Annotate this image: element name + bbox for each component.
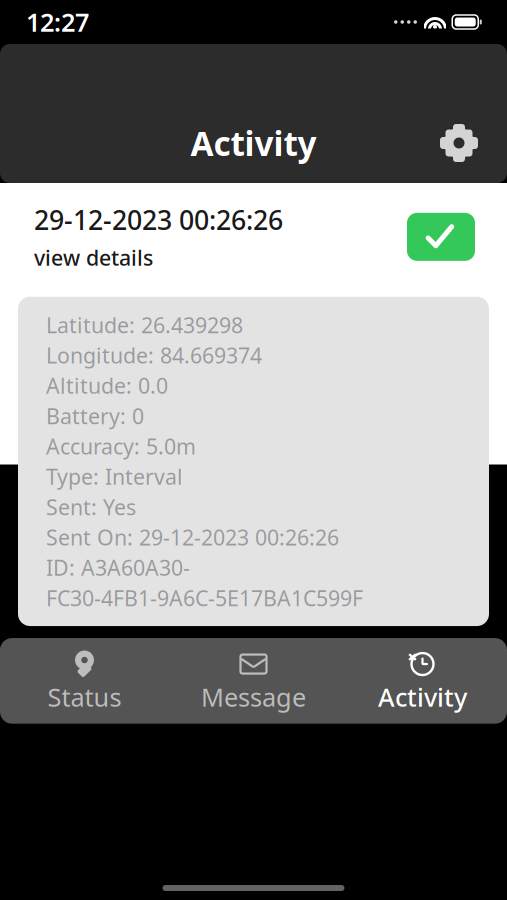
button[interactable]: Status [0,644,169,720]
staticText: Longitude: 84.669374 [46,341,262,369]
staticText: Accuracy: 5.0m [46,432,196,460]
staticText: Type: Interval [46,462,183,491]
staticText: Battery: 0 [46,402,144,430]
staticText: FC30-4FB1-9A6C-5E17BA1C599F [46,584,363,612]
staticText: ID: A3A60A30- [46,553,190,582]
button[interactable]: 29-12-2023 00:26:26 [18,191,489,283]
staticText: Activity [190,121,316,165]
staticText: Activity [378,680,467,714]
button[interactable]: Settings [433,117,485,169]
staticText: 29-12-2023 00:26:26 [34,202,283,237]
staticText: Message [201,680,306,714]
staticText: view details [34,243,153,272]
button[interactable]: Activity [338,644,507,720]
button[interactable]: Message [169,644,338,720]
staticText: Sent On: 29-12-2023 00:26:26 [46,523,339,551]
staticText: 12:27 [26,5,89,39]
staticText: Latitude: 26.439298 [46,311,243,339]
staticText: Status [47,680,121,714]
staticText: Altitude: 0.0 [46,371,168,400]
staticText: Sent: Yes [46,493,136,521]
